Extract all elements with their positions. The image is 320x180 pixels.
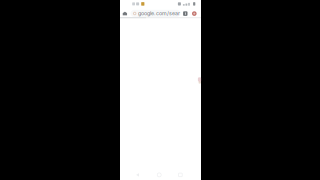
button[interactable]: google.com/sear: [130, 10, 180, 17]
button[interactable]: Recents: [179, 173, 182, 177]
button[interactable]: Back: [136, 173, 139, 177]
button[interactable]: Home: [123, 11, 127, 16]
button[interactable]: Home: [157, 173, 161, 177]
staticText: google.com/sear: [138, 10, 180, 17]
button[interactable]: Tabs: [183, 11, 188, 16]
button[interactable]: Stop loading: [192, 11, 197, 16]
